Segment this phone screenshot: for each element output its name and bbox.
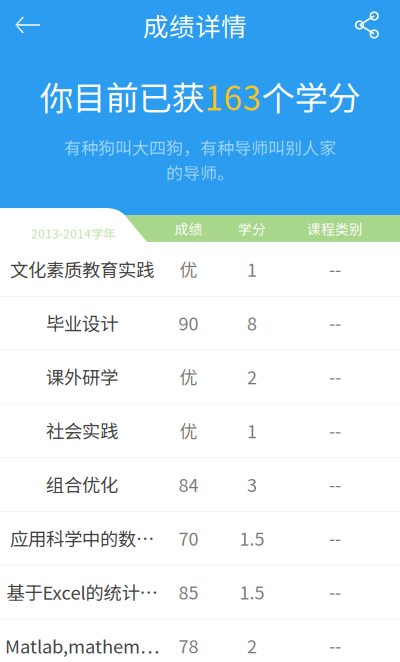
staticText: 文化素质教育实践 — [10, 256, 154, 282]
staticText: 84 — [178, 471, 198, 497]
staticText: 课程类别 — [307, 219, 363, 238]
button[interactable]: 基于Excel的统计… — [0, 565, 400, 619]
staticText: 优 — [179, 417, 197, 443]
button[interactable]: 文化素质教育实践 — [0, 242, 400, 296]
button[interactable]: 毕业设计 — [0, 296, 400, 350]
staticText: 成绩详情 — [143, 6, 247, 44]
button[interactable]: 课外研学 — [0, 350, 400, 403]
staticText: 3 — [247, 471, 257, 497]
button[interactable]: Share — [339, 0, 395, 50]
staticText: 应用科学中的数… — [10, 525, 154, 551]
button[interactable]: 社会实践 — [0, 403, 400, 457]
staticText: 毕业设计 — [46, 309, 118, 336]
staticText: -- — [329, 525, 341, 551]
staticText: -- — [329, 471, 341, 497]
staticText: 163 — [204, 72, 261, 120]
staticText: 个学分 — [261, 72, 360, 120]
staticText: 有种狗叫大四狗，有种导师叫别人家 — [64, 135, 336, 159]
staticText: -- — [329, 579, 341, 605]
staticText: -- — [329, 363, 341, 390]
staticText: 78 — [178, 632, 198, 659]
button[interactable]: 组合优化 — [0, 457, 400, 511]
staticText: 2 — [247, 363, 257, 390]
staticText: 社会实践 — [46, 417, 118, 444]
staticText: 1 — [247, 417, 257, 443]
staticText: 成绩 — [174, 219, 202, 238]
staticText: 优 — [179, 363, 197, 390]
staticText: 1.5 — [239, 525, 264, 551]
staticText: 85 — [178, 579, 198, 605]
staticText: 学分 — [238, 219, 266, 238]
staticText: 90 — [178, 310, 198, 336]
staticText: 1 — [247, 256, 257, 282]
staticText: 1.5 — [239, 579, 264, 605]
staticText: 课外研学 — [46, 363, 118, 390]
staticText: -- — [329, 310, 341, 336]
staticText: 你目前已获 — [39, 72, 204, 120]
staticText: 优 — [179, 256, 197, 282]
staticText: 70 — [178, 525, 198, 551]
button[interactable]: 应用科学中的数… — [0, 511, 400, 565]
staticText: 8 — [247, 310, 257, 336]
staticText: -- — [329, 632, 341, 659]
staticText: 基于Excel的统计… — [6, 578, 157, 605]
staticText: 2013-2014学年 — [31, 224, 115, 242]
staticText: Matlab,mathem… — [5, 632, 159, 659]
staticText: 组合优化 — [46, 471, 118, 497]
staticText: 的导师。 — [166, 160, 234, 184]
staticText: -- — [329, 256, 341, 282]
button[interactable]: Matlab,mathem… — [0, 619, 400, 662]
staticText: -- — [329, 417, 341, 443]
button[interactable]: Back — [0, 0, 56, 50]
staticText: 2 — [247, 632, 257, 659]
